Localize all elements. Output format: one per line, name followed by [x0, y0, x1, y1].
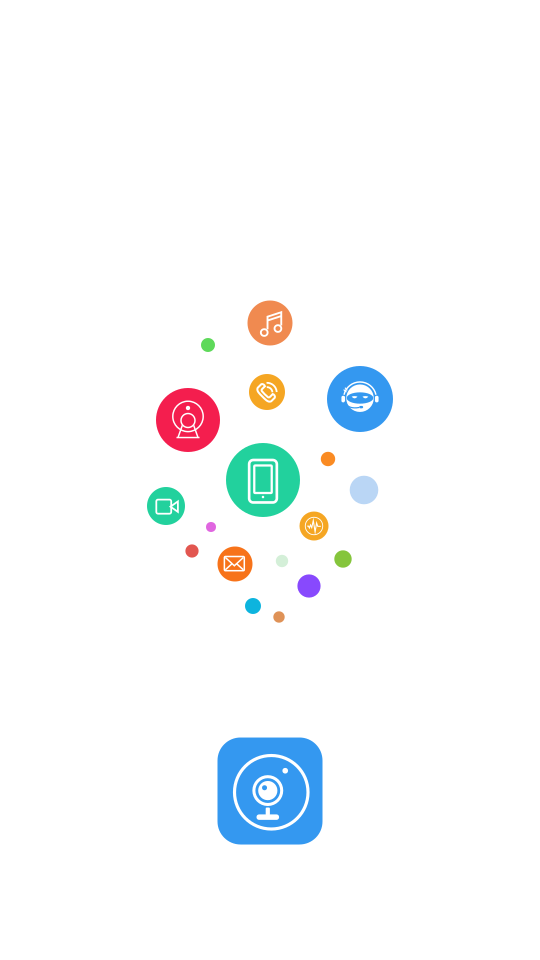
button[interactable]: Open app [217, 737, 322, 844]
